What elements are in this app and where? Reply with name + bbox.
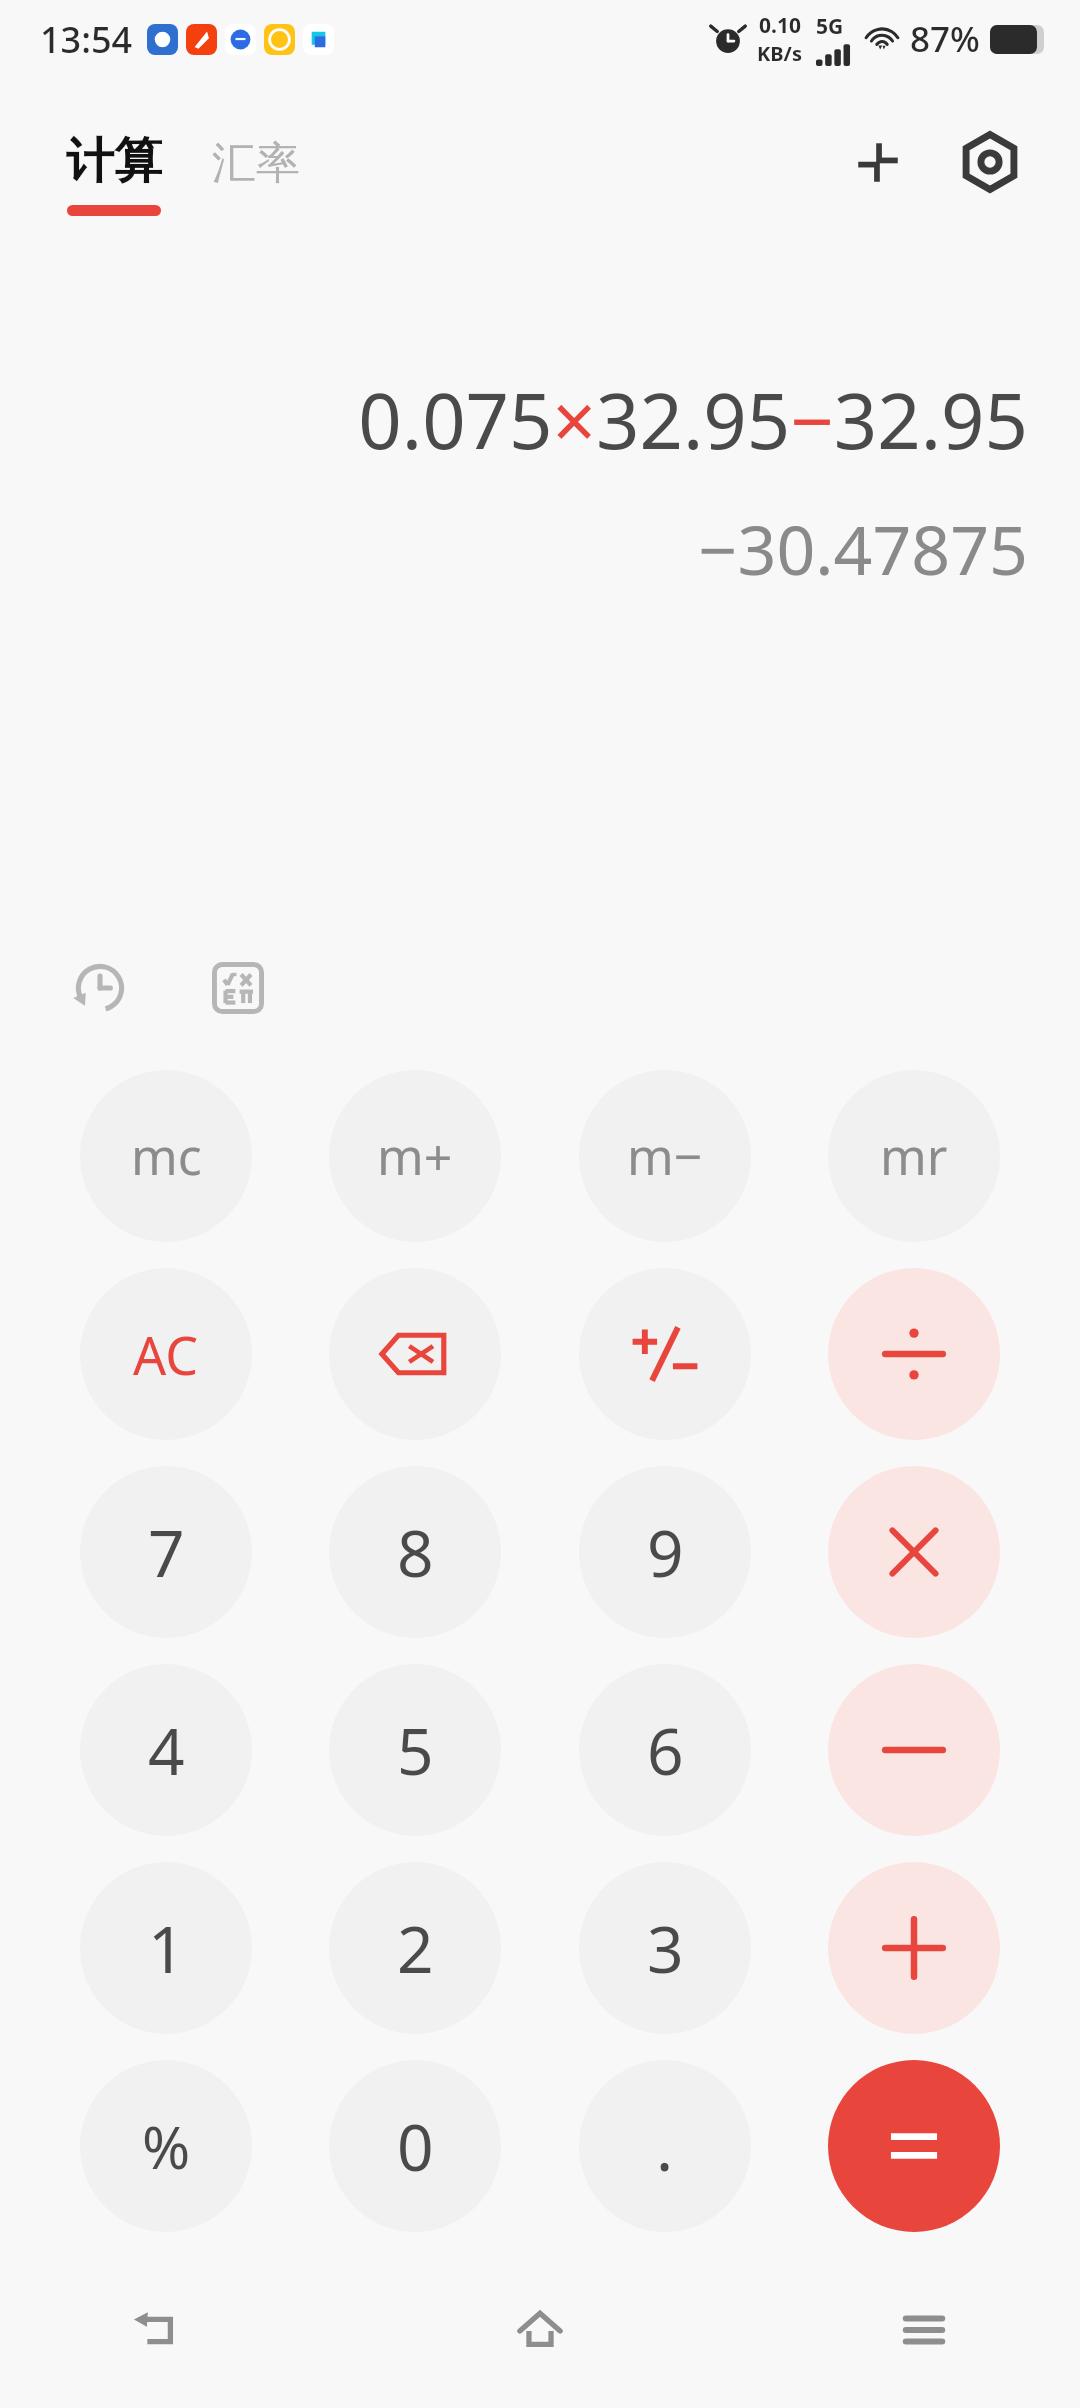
staticText: KB/s xyxy=(757,40,802,67)
staticText: 7 xyxy=(148,1509,185,1596)
button[interactable]: 9 xyxy=(579,1466,751,1638)
staticText: mc xyxy=(131,1122,202,1190)
button[interactable]: m− xyxy=(579,1070,751,1242)
staticText: −30.47875 xyxy=(698,502,1028,595)
staticText: 汇率 xyxy=(212,136,300,191)
staticText: 1 xyxy=(148,1905,185,1992)
button[interactable]: Divide xyxy=(828,1268,1000,1440)
button[interactable]: Settings xyxy=(946,118,1034,206)
button[interactable]: AC xyxy=(80,1268,252,1440)
button[interactable]: Back xyxy=(110,2284,202,2376)
button[interactable]: 汇率 xyxy=(212,136,300,216)
button[interactable]: 8 xyxy=(329,1466,501,1638)
button[interactable]: Minus xyxy=(828,1664,1000,1836)
button[interactable]: Collapse xyxy=(834,118,922,206)
staticText: 0 xyxy=(397,2103,434,2190)
staticText: m− xyxy=(627,1122,703,1190)
staticText: 87% xyxy=(910,15,980,63)
staticText: 3 xyxy=(647,1905,684,1992)
button[interactable]: 3 xyxy=(579,1862,751,2034)
staticText: 8 xyxy=(397,1509,434,1596)
button[interactable]: 7 xyxy=(80,1466,252,1638)
button[interactable]: 5 xyxy=(329,1664,501,1836)
staticText: 9 xyxy=(647,1509,684,1596)
staticText: 0.075×32.95−32.95 xyxy=(358,368,1028,472)
staticText: 5G xyxy=(816,12,844,41)
button[interactable]: 0 xyxy=(329,2060,501,2232)
button[interactable]: mr xyxy=(828,1070,1000,1242)
button[interactable]: m+ xyxy=(329,1070,501,1242)
staticText: m+ xyxy=(377,1122,453,1190)
staticText: 0.10 xyxy=(759,11,801,40)
button[interactable]: . xyxy=(579,2060,751,2232)
button[interactable]: Equals xyxy=(828,2060,1000,2232)
button[interactable]: Plus xyxy=(828,1862,1000,2034)
staticText: 计算 xyxy=(66,131,162,191)
button[interactable]: 1 xyxy=(80,1862,252,2034)
button[interactable]: 计算 xyxy=(66,131,162,216)
staticText: 6 xyxy=(647,1707,684,1794)
button[interactable]: History xyxy=(58,946,142,1030)
button[interactable]: Toggle sign xyxy=(579,1268,751,1440)
button[interactable]: Home xyxy=(494,2284,586,2376)
staticText: % xyxy=(142,2107,191,2186)
staticText: 13:54 xyxy=(40,15,133,64)
staticText: mr xyxy=(880,1122,948,1190)
button[interactable]: 2 xyxy=(329,1862,501,2034)
staticText: 5 xyxy=(397,1707,434,1794)
staticText: AC xyxy=(133,1319,199,1390)
staticText: 2 xyxy=(397,1905,434,1992)
button[interactable]: mc xyxy=(80,1070,252,1242)
button[interactable]: % xyxy=(80,2060,252,2232)
button[interactable]: Scientific mode xyxy=(196,946,280,1030)
button[interactable]: Recents xyxy=(878,2284,970,2376)
button[interactable]: 4 xyxy=(80,1664,252,1836)
button[interactable]: Backspace xyxy=(329,1268,501,1440)
staticText: . xyxy=(656,2103,674,2190)
staticText: 4 xyxy=(148,1707,185,1794)
button[interactable]: 6 xyxy=(579,1664,751,1836)
button[interactable]: Multiply xyxy=(828,1466,1000,1638)
